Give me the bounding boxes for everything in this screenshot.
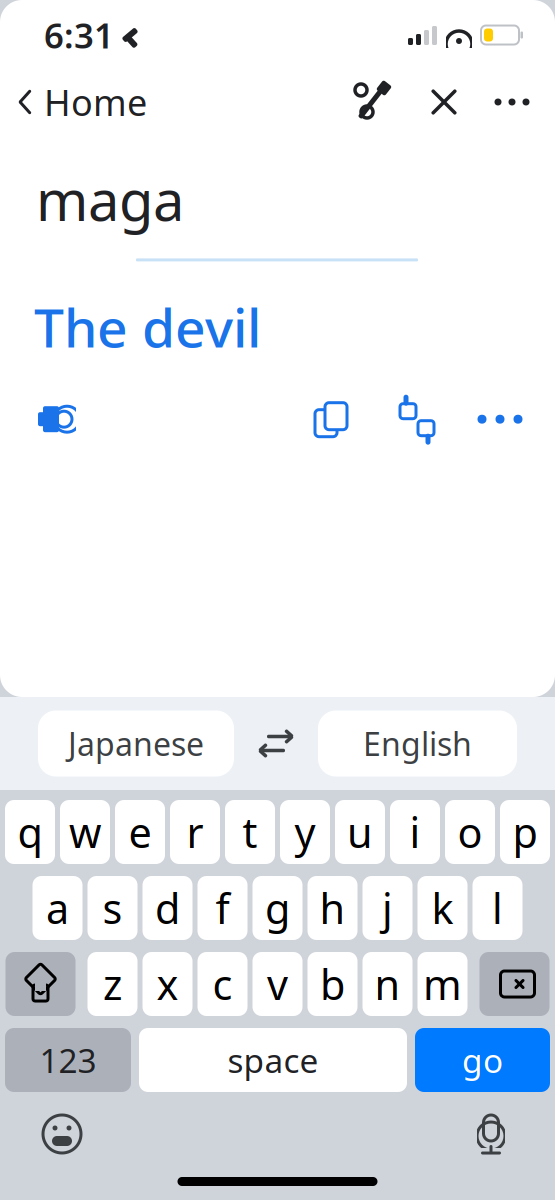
button[interactable]: v	[252, 952, 302, 1016]
button[interactable]: Japanese	[38, 710, 234, 776]
staticText: v	[267, 957, 288, 1011]
staticText: y	[294, 805, 315, 859]
button[interactable]: f	[197, 876, 247, 940]
button[interactable]: k	[417, 876, 467, 940]
staticText: English	[363, 722, 472, 765]
button[interactable]: j	[362, 876, 412, 940]
button[interactable]: x	[142, 952, 192, 1016]
button[interactable]: a	[32, 876, 82, 940]
staticText: maga	[36, 162, 184, 236]
button[interactable]: r	[170, 800, 220, 864]
button[interactable]: Handwriting input	[345, 75, 399, 129]
button[interactable]: w	[60, 800, 110, 864]
button[interactable]: Swap languages	[234, 710, 318, 776]
button[interactable]: 123	[5, 1028, 131, 1092]
staticText: i	[409, 805, 420, 859]
button[interactable]: s	[87, 876, 137, 940]
button[interactable]: More options	[485, 75, 539, 129]
staticText: w	[69, 805, 101, 859]
staticText: m	[423, 957, 462, 1011]
button[interactable]: q	[5, 800, 55, 864]
button[interactable]: m	[417, 952, 467, 1016]
button[interactable]: Delete	[479, 952, 549, 1016]
button[interactable]: b	[307, 952, 357, 1016]
button[interactable]: Rate this translation	[389, 392, 445, 446]
button[interactable]: Shift	[5, 952, 75, 1016]
staticText: l	[492, 881, 503, 935]
button[interactable]: y	[280, 800, 330, 864]
button[interactable]: Home	[0, 66, 147, 138]
staticText: d	[155, 881, 180, 935]
staticText: Home	[44, 78, 147, 126]
staticText: s	[102, 881, 122, 935]
button[interactable]: n	[362, 952, 412, 1016]
button[interactable]: space	[139, 1028, 407, 1092]
button[interactable]: Emoji keyboard	[30, 1104, 94, 1164]
button[interactable]: e	[115, 800, 165, 864]
staticText: a	[46, 881, 69, 935]
staticText: n	[374, 957, 400, 1011]
staticText: 6:31	[44, 12, 114, 58]
button[interactable]: u	[335, 800, 385, 864]
staticText: q	[17, 805, 42, 859]
button[interactable]: h	[307, 876, 357, 940]
staticText: t	[242, 805, 257, 859]
button[interactable]: o	[445, 800, 495, 864]
staticText: x	[156, 957, 178, 1011]
button[interactable]: More translation options	[469, 392, 531, 446]
button[interactable]: c	[197, 952, 247, 1016]
staticText: space	[227, 1038, 318, 1082]
staticText: c	[212, 957, 232, 1011]
staticText: p	[512, 805, 537, 859]
button[interactable]: p	[500, 800, 550, 864]
staticText: o	[457, 805, 482, 859]
button[interactable]: Close	[417, 75, 471, 129]
button[interactable]: English	[318, 710, 517, 776]
staticText: g	[265, 881, 290, 935]
button[interactable]: d	[142, 876, 192, 940]
button[interactable]: go	[415, 1028, 550, 1092]
button[interactable]: t	[225, 800, 275, 864]
staticText: r	[186, 805, 203, 859]
staticText: z	[103, 957, 122, 1011]
button[interactable]: Dictation	[459, 1104, 523, 1164]
staticText: e	[128, 805, 151, 859]
staticText: Japanese	[68, 722, 204, 765]
staticText: f	[215, 881, 229, 935]
button[interactable]: z	[87, 952, 137, 1016]
staticText: k	[431, 881, 453, 935]
button[interactable]: g	[252, 876, 302, 940]
staticText: b	[320, 957, 345, 1011]
button[interactable]: l	[472, 876, 522, 940]
staticText: u	[347, 805, 373, 859]
staticText: 123	[39, 1038, 96, 1082]
button[interactable]: Listen	[24, 392, 84, 446]
staticText: h	[319, 881, 345, 935]
button[interactable]: i	[390, 800, 440, 864]
staticText: The devil	[34, 291, 261, 362]
staticText: j	[382, 881, 393, 935]
button[interactable]: Copy translation	[303, 392, 359, 446]
staticText: go	[462, 1038, 503, 1082]
